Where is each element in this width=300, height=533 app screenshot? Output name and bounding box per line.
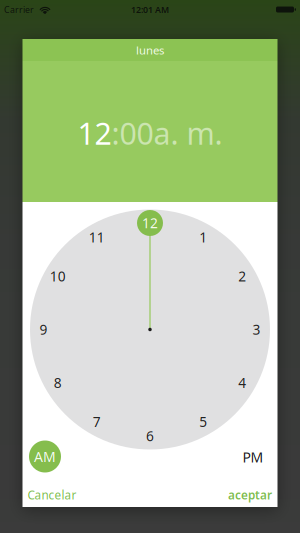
staticText: 7 bbox=[93, 412, 101, 431]
button[interactable]: 1 bbox=[190, 224, 216, 250]
button[interactable]: 10 bbox=[45, 263, 71, 289]
button[interactable]: 12 bbox=[137, 210, 163, 236]
button[interactable]: AM bbox=[29, 440, 61, 472]
staticText: 2 bbox=[238, 267, 246, 286]
button[interactable]: 4 bbox=[229, 370, 255, 396]
staticText: 4 bbox=[238, 373, 246, 392]
staticText: 6 bbox=[146, 427, 154, 445]
button[interactable]: 11 bbox=[84, 224, 110, 250]
button[interactable]: 8 bbox=[45, 370, 71, 396]
button[interactable]: 2 bbox=[229, 263, 255, 289]
staticText: Carrier bbox=[4, 3, 34, 15]
button[interactable]: Cancelar bbox=[27, 487, 76, 503]
staticText: 00 bbox=[119, 112, 153, 154]
staticText: 1 bbox=[199, 228, 207, 247]
staticText: 3 bbox=[252, 320, 260, 339]
staticText: : bbox=[111, 112, 119, 154]
button[interactable]: 5 bbox=[190, 409, 216, 435]
button[interactable]: 9 bbox=[30, 316, 56, 342]
button[interactable]: PM bbox=[237, 441, 269, 473]
staticText: 9 bbox=[39, 320, 47, 339]
staticText: 8 bbox=[54, 373, 62, 392]
button[interactable]: 6 bbox=[137, 423, 163, 449]
staticText: a. m. bbox=[153, 112, 222, 154]
button[interactable]: 12 bbox=[77, 112, 111, 154]
staticText: Cancelar bbox=[27, 487, 76, 503]
staticText: lunes bbox=[136, 42, 164, 58]
button[interactable]: aceptar bbox=[228, 487, 272, 503]
staticText: 10 bbox=[50, 267, 66, 286]
staticText: PM bbox=[242, 447, 263, 467]
staticText: aceptar bbox=[228, 487, 272, 503]
staticText: AM bbox=[34, 447, 56, 466]
button[interactable]: 3 bbox=[243, 316, 269, 342]
staticText: 12 bbox=[77, 112, 111, 154]
button[interactable]: 7 bbox=[84, 409, 110, 435]
staticText: 11 bbox=[89, 228, 105, 247]
staticText: 5 bbox=[199, 412, 207, 431]
staticText: 12 bbox=[142, 214, 158, 232]
staticText: 12:01 AM bbox=[131, 3, 169, 15]
button[interactable]: 00 bbox=[119, 112, 153, 154]
